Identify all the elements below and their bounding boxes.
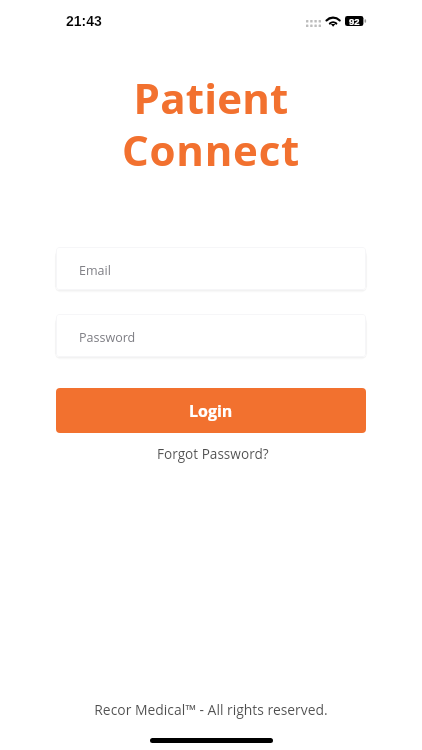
staticText: Email <box>79 262 111 279</box>
staticText: Recor Medical™ - All rights reserved. <box>0 700 422 719</box>
staticText: Patient <box>0 69 422 126</box>
other: Battery 92 percent <box>345 16 368 27</box>
button[interactable]: Password <box>56 314 366 357</box>
staticText: Password <box>79 329 136 346</box>
other: Wi-Fi <box>326 16 341 27</box>
staticText: Login <box>189 400 233 422</box>
button[interactable]: Email <box>56 247 366 290</box>
other: Cellular signal <box>306 20 322 29</box>
staticText: Connect <box>0 121 422 178</box>
staticText: 92 <box>349 16 360 26</box>
staticText: 21:43 <box>66 13 102 29</box>
button[interactable]: Login <box>56 388 366 433</box>
staticText: Forgot Password? <box>157 444 269 463</box>
button[interactable]: Forgot Password? <box>149 440 277 467</box>
